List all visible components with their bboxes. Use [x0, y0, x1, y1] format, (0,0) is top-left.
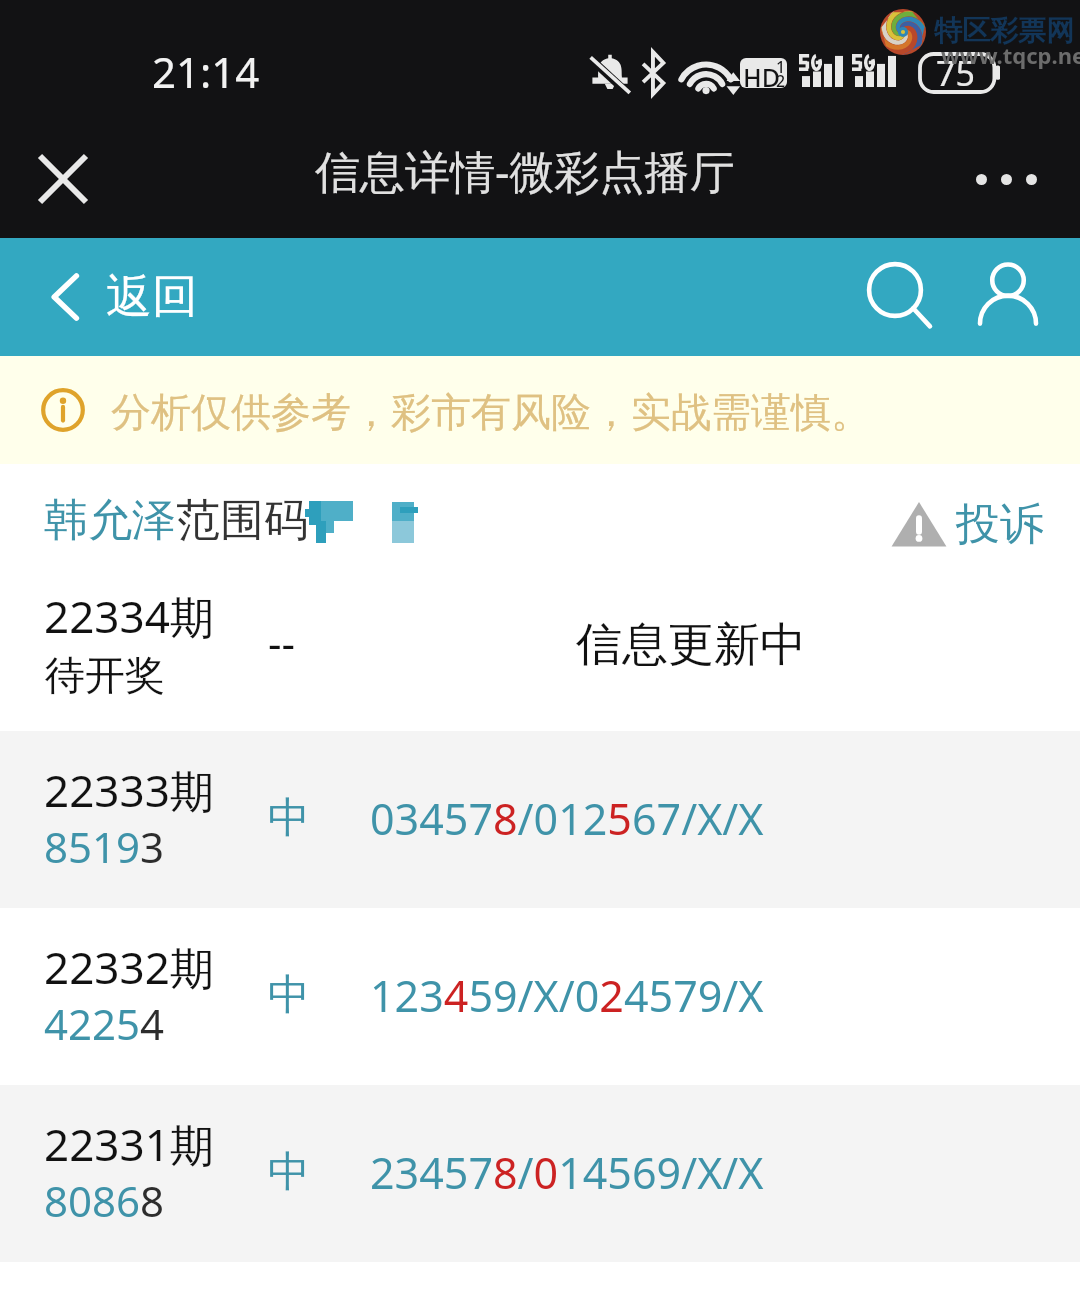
staticText: 特区彩票网 [934, 13, 1074, 48]
staticText: 信息详情-微彩点播厅 [315, 140, 735, 201]
staticText: 85193 [44, 818, 165, 875]
staticText: 中 [268, 969, 310, 1022]
staticText: 中 [268, 792, 310, 845]
staticText: 034578/012567/X/X [370, 789, 764, 848]
button[interactable]: 投诉 [891, 491, 1044, 557]
button[interactable]: Account [962, 251, 1054, 343]
staticText: 分析仅供参考，彩市有风险，实战需谨慎。 [111, 387, 871, 437]
staticText: 返回 [106, 268, 198, 326]
staticText: HD [743, 60, 780, 94]
staticText: 中 [268, 1146, 310, 1199]
button[interactable]: Close [20, 136, 106, 222]
staticText: 22333期 [44, 760, 214, 820]
button[interactable]: Search [856, 251, 948, 343]
staticText: 234578/014569/X/X [370, 1143, 764, 1202]
staticText: 韩允泽范围码 [44, 493, 308, 548]
staticText: 22332期 [44, 937, 214, 997]
staticText: 75 [936, 50, 975, 96]
button[interactable]: 22332期 [0, 908, 1080, 1085]
staticText: 21:14 [152, 43, 260, 100]
staticText: -- [268, 614, 296, 671]
staticText: 信息更新中 [576, 616, 806, 674]
staticText: 2 [776, 70, 786, 92]
button[interactable]: 22334期 [0, 578, 1080, 731]
staticText: 80868 [44, 1172, 165, 1229]
staticText: 待开奖 [45, 650, 165, 700]
button[interactable]: 返回 [50, 268, 198, 326]
button[interactable]: 22333期 [0, 731, 1080, 908]
staticText: 22334期 [44, 586, 214, 646]
button[interactable]: More options [958, 131, 1054, 227]
staticText: 1 [776, 56, 786, 78]
staticText: 42254 [44, 995, 165, 1052]
staticText: 投诉 [956, 497, 1044, 552]
staticText: 123459/X/024579/X [370, 966, 764, 1025]
button[interactable]: 22331期 [0, 1085, 1080, 1262]
staticText: 22331期 [44, 1114, 214, 1174]
staticText: www.tqcp.net [941, 40, 1080, 70]
